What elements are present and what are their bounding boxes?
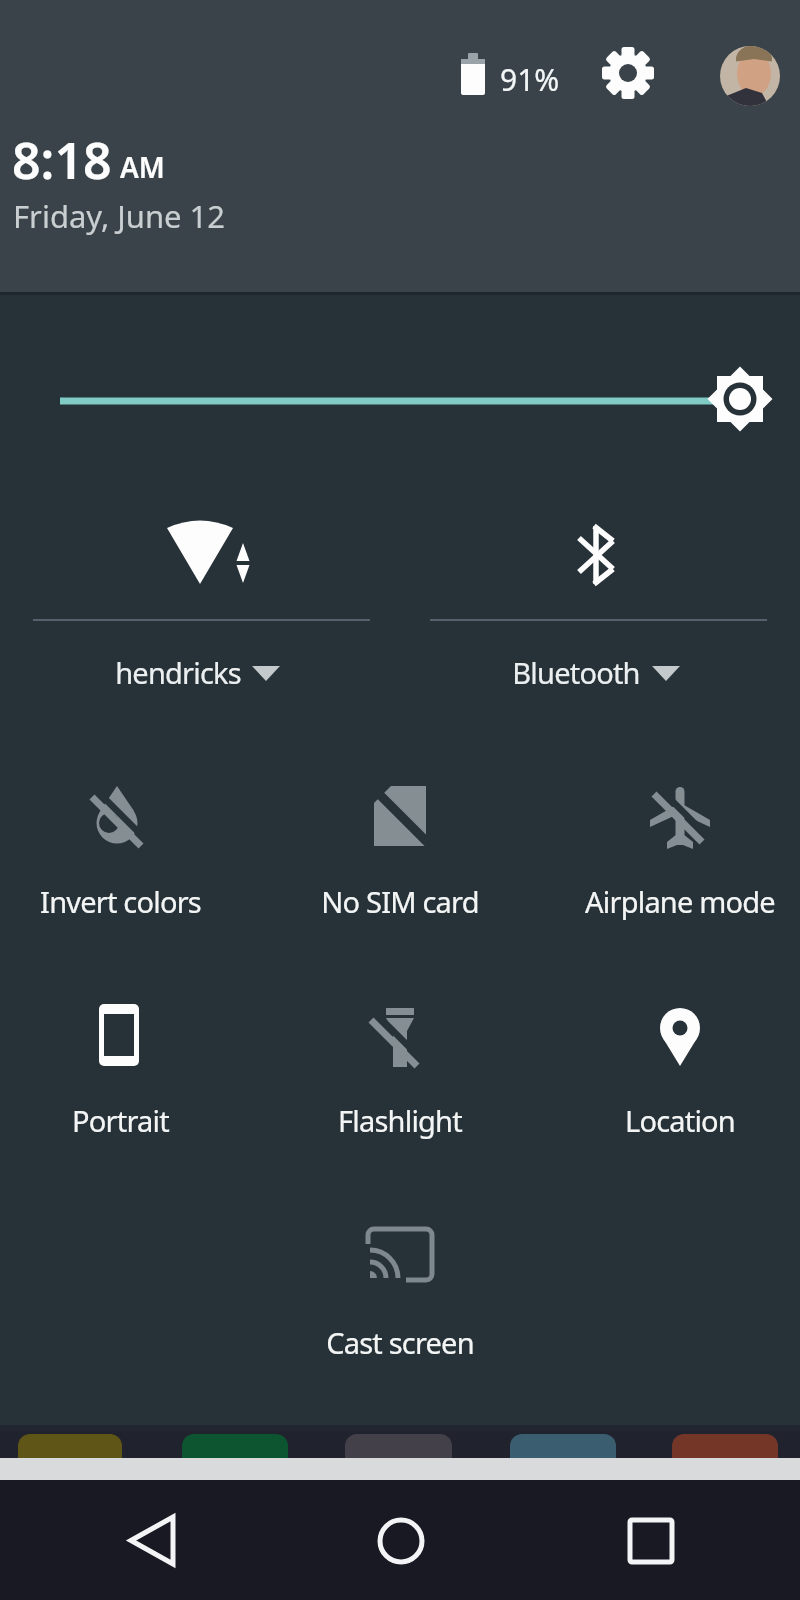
button[interactable]: [90, 1490, 210, 1590]
button[interactable]: [718, 44, 782, 108]
button[interactable]: [300, 760, 500, 930]
button[interactable]: [580, 980, 780, 1150]
button[interactable]: [440, 500, 760, 710]
staticText: Flashlight: [338, 1101, 462, 1140]
button[interactable]: [340, 1490, 460, 1590]
button[interactable]: [20, 980, 220, 1150]
staticText: Portrait: [72, 1101, 169, 1140]
staticText: Location: [625, 1101, 735, 1140]
staticText: Bluetooth: [512, 653, 640, 692]
button[interactable]: [40, 500, 360, 710]
button[interactable]: [580, 760, 780, 930]
button[interactable]: [590, 1490, 710, 1590]
staticText: No SIM card: [321, 882, 479, 921]
staticText: Airplane mode: [585, 882, 775, 921]
button[interactable]: [40, 360, 770, 440]
button[interactable]: [20, 760, 220, 930]
button[interactable]: [300, 1200, 500, 1370]
staticText: 91%: [500, 59, 560, 100]
button[interactable]: [600, 45, 656, 101]
staticText: 8:18: [12, 126, 112, 194]
staticText: hendricks: [115, 653, 241, 692]
staticText: Cast screen: [326, 1323, 474, 1362]
button[interactable]: [300, 980, 500, 1150]
staticText: AM: [120, 148, 165, 186]
staticText: Invert colors: [40, 882, 201, 921]
staticText: Friday, June 12: [13, 195, 226, 237]
